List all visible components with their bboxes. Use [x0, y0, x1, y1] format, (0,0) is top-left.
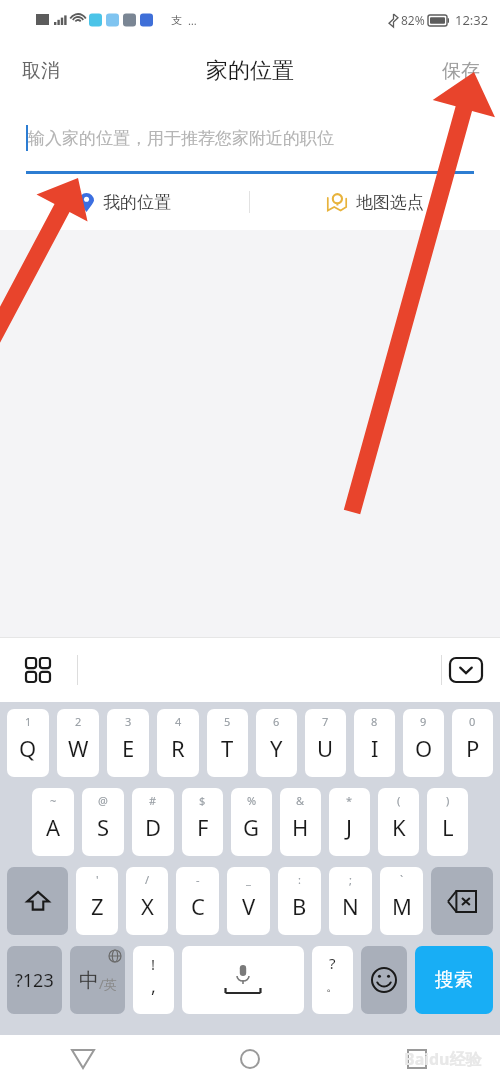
staticText: 1 [25, 714, 32, 729]
staticText: Q [19, 733, 37, 763]
staticText: H [292, 812, 309, 842]
staticText: ! [151, 954, 156, 974]
staticText: 。 [326, 978, 339, 994]
button[interactable]: 搜索 [415, 946, 493, 1014]
staticText: $ [199, 793, 206, 808]
staticText: ) [446, 793, 450, 808]
button[interactable]: ? [312, 946, 353, 1014]
staticText: : [298, 872, 301, 887]
button[interactable]: ` [380, 867, 423, 935]
staticText: _ [246, 872, 251, 887]
staticText: # [149, 793, 157, 808]
button[interactable]: 2 [57, 709, 99, 777]
staticText: 4 [175, 714, 182, 729]
button[interactable]: 3 [107, 709, 149, 777]
staticText: 6 [273, 714, 280, 729]
staticText: @ [98, 793, 108, 808]
button[interactable]: Emoji [361, 946, 407, 1014]
button[interactable]: 7 [305, 709, 346, 777]
button[interactable]: - [176, 867, 219, 935]
button[interactable]: 6 [256, 709, 297, 777]
button[interactable]: @ [82, 788, 124, 856]
button[interactable]: ) [427, 788, 468, 856]
staticText: … [188, 13, 197, 28]
button[interactable]: 9 [403, 709, 444, 777]
button[interactable]: Back [0, 1035, 166, 1083]
button[interactable]: 取消 [0, 47, 82, 95]
staticText: 7 [322, 714, 329, 729]
staticText: W [68, 733, 89, 763]
staticText: Baidu经验 [404, 1048, 482, 1070]
staticText: M [392, 891, 412, 921]
staticText: & [296, 793, 305, 808]
button[interactable]: Recents [333, 1035, 500, 1083]
staticText: Y [270, 733, 283, 763]
staticText: 地图选点 [356, 192, 424, 213]
staticText: , [151, 974, 156, 999]
button[interactable]: * [329, 788, 370, 856]
staticText: J [346, 812, 353, 842]
staticText: 保存 [442, 59, 480, 83]
staticText: 9 [420, 714, 427, 729]
button[interactable]: 我的位置 [0, 174, 249, 230]
staticText: U [317, 733, 334, 763]
button[interactable]: ?123 [7, 946, 62, 1014]
button[interactable]: ( [378, 788, 419, 856]
staticText: 2 [75, 714, 82, 729]
staticText: ~ [50, 793, 57, 808]
staticText: N [342, 891, 359, 921]
button[interactable]: 5 [207, 709, 248, 777]
staticText: % [247, 793, 257, 808]
staticText: ' [96, 872, 99, 887]
staticText: 取消 [22, 59, 60, 83]
staticText: G [243, 812, 260, 842]
button[interactable]: ; [329, 867, 372, 935]
button[interactable]: Space [182, 946, 304, 1014]
button[interactable]: ' [76, 867, 118, 935]
button[interactable]: 1 [7, 709, 49, 777]
button[interactable]: % [231, 788, 272, 856]
staticText: X [141, 891, 154, 921]
button[interactable]: 4 [157, 709, 199, 777]
staticText: V [242, 891, 256, 921]
button[interactable]: _ [227, 867, 270, 935]
button[interactable]: / [126, 867, 168, 935]
staticText: 中 [79, 968, 99, 993]
staticText: I [371, 733, 379, 763]
staticText: 0 [469, 714, 476, 729]
staticText: /英 [99, 975, 117, 993]
button[interactable]: Shift [7, 867, 68, 935]
staticText: O [415, 733, 433, 763]
staticText: T [221, 733, 234, 763]
button[interactable]: 0 [452, 709, 493, 777]
button[interactable]: ~ [32, 788, 74, 856]
staticText: 3 [125, 714, 132, 729]
staticText: ?123 [15, 968, 54, 993]
staticText: ` [400, 872, 404, 887]
button[interactable]: 中 [70, 946, 125, 1014]
button[interactable]: Hide keyboard [446, 654, 486, 686]
button[interactable]: ! [133, 946, 174, 1014]
button[interactable]: : [278, 867, 321, 935]
button[interactable]: 地图选点 [250, 174, 500, 230]
staticText: F [197, 812, 209, 842]
staticText: ; [349, 872, 352, 887]
staticText: 支 [171, 13, 182, 27]
button[interactable]: # [132, 788, 174, 856]
staticText: ( [397, 793, 401, 808]
button[interactable]: Keyboard layouts [18, 650, 58, 690]
button[interactable]: Backspace [431, 867, 493, 935]
staticText: D [145, 812, 162, 842]
staticText: C [191, 891, 205, 921]
staticText: R [171, 733, 185, 763]
staticText: - [196, 872, 200, 887]
staticText: S [97, 812, 110, 842]
staticText: 5 [224, 714, 231, 729]
staticText: L [442, 812, 454, 842]
button[interactable]: 保存 [422, 47, 500, 95]
button[interactable]: $ [182, 788, 223, 856]
staticText: 12:32 [455, 11, 489, 29]
button[interactable]: & [280, 788, 321, 856]
button[interactable]: Home [166, 1035, 333, 1083]
button[interactable]: 8 [354, 709, 395, 777]
